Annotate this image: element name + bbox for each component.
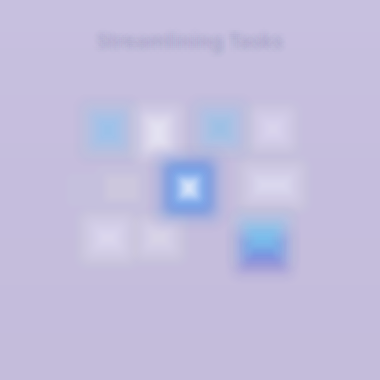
- staticText: Streamlining Tasks: [95, 23, 281, 50]
- staticText: Streamlining Tasks: [93, 25, 279, 52]
- staticText: Streamlining Tasks: [95, 29, 281, 56]
- staticText: Streamlining Tasks: [99, 29, 285, 56]
- staticText: Streamlining Tasks: [93, 23, 279, 50]
- staticText: Streamlining Tasks: [99, 25, 285, 52]
- staticText: Streamlining Tasks: [97, 23, 283, 50]
- staticText: Streamlining Tasks: [103, 27, 289, 54]
- staticText: Streamlining Tasks: [97, 27, 283, 54]
- staticText: Streamlining Tasks: [91, 31, 277, 58]
- staticText: Streamlining Tasks: [99, 31, 285, 58]
- staticText: Streamlining Tasks: [99, 21, 285, 48]
- staticText: Streamlining Tasks: [99, 27, 285, 54]
- staticText: Streamlining Tasks: [93, 33, 279, 60]
- staticText: Streamlining Tasks: [95, 33, 281, 60]
- staticText: Streamlining Tasks: [101, 25, 287, 52]
- staticText: Streamlining Tasks: [97, 29, 283, 56]
- staticText: Streamlining Tasks: [99, 33, 285, 60]
- staticText: Streamlining Tasks: [101, 27, 287, 54]
- staticText: Streamlining Tasks: [101, 21, 287, 48]
- staticText: Streamlining Tasks: [101, 33, 287, 60]
- staticText: Streamlining Tasks: [101, 23, 287, 50]
- staticText: Streamlining Tasks: [101, 31, 287, 58]
- staticText: Streamlining Tasks: [103, 31, 289, 58]
- staticText: Streamlining Tasks: [103, 29, 289, 56]
- staticText: Streamlining Tasks: [91, 29, 277, 56]
- staticText: Streamlining Tasks: [91, 27, 277, 54]
- staticText: Streamlining Tasks: [91, 23, 277, 50]
- staticText: Streamlining Tasks: [97, 33, 283, 60]
- staticText: Streamlining Tasks: [97, 21, 283, 48]
- staticText: Streamlining Tasks: [93, 21, 279, 48]
- staticText: Streamlining Tasks: [97, 25, 283, 52]
- staticText: Streamlining Tasks: [95, 27, 281, 54]
- staticText: Streamlining Tasks: [95, 21, 281, 48]
- staticText: Streamlining Tasks: [97, 31, 283, 58]
- staticText: Streamlining Tasks: [93, 31, 279, 58]
- staticText: Streamlining Tasks: [101, 29, 287, 56]
- staticText: Streamlining Tasks: [99, 23, 285, 50]
- staticText: Streamlining Tasks: [91, 25, 277, 52]
- staticText: Streamlining Tasks: [93, 29, 279, 56]
- staticText: Streamlining Tasks: [93, 27, 279, 54]
- staticText: Streamlining Tasks: [103, 23, 289, 50]
- staticText: Streamlining Tasks: [95, 31, 281, 58]
- staticText: Streamlining Tasks: [95, 25, 281, 52]
- staticText: Streamlining Tasks: [103, 25, 289, 52]
